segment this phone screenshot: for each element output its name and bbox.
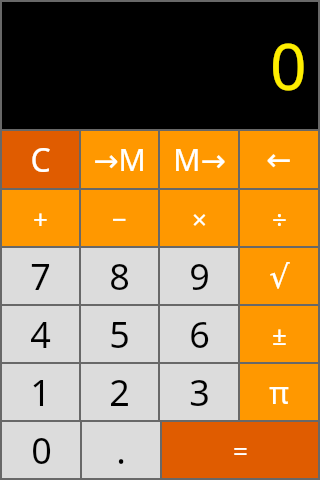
button[interactable]: 4 [2, 306, 79, 362]
staticText: ÷ [272, 201, 287, 236]
button[interactable]: →M [81, 131, 158, 188]
button[interactable]: √ [240, 248, 318, 304]
button[interactable]: − [81, 190, 158, 246]
button[interactable]: ← [240, 131, 318, 188]
button[interactable]: + [2, 190, 79, 246]
staticText: →M [93, 139, 146, 180]
button[interactable]: 1 [2, 364, 79, 420]
button[interactable]: M→ [160, 131, 238, 188]
staticText: 7 [30, 252, 51, 301]
staticText: √ [269, 258, 290, 295]
staticText: 1 [30, 368, 51, 417]
button[interactable]: ÷ [240, 190, 318, 246]
button[interactable]: 5 [81, 306, 158, 362]
button[interactable]: 0 [2, 422, 80, 478]
staticText: M→ [173, 139, 226, 180]
staticText: 6 [189, 310, 210, 359]
staticText: − [112, 201, 127, 236]
button[interactable]: 8 [81, 248, 158, 304]
button[interactable]: C [2, 131, 79, 188]
button[interactable]: 7 [2, 248, 79, 304]
staticText: + [33, 201, 48, 236]
staticText: 4 [30, 310, 51, 359]
button[interactable]: 9 [160, 248, 238, 304]
staticText: 9 [189, 252, 210, 301]
staticText: ← [266, 142, 292, 177]
button[interactable]: × [160, 190, 238, 246]
button[interactable]: π [240, 364, 318, 420]
button[interactable]: ± [240, 306, 318, 362]
staticText: 2 [109, 368, 130, 417]
staticText: 5 [109, 310, 130, 359]
button[interactable]: . [82, 422, 160, 478]
staticText: = [233, 433, 248, 468]
staticText: π [269, 372, 289, 413]
staticText: × [192, 201, 207, 236]
button[interactable]: 2 [81, 364, 158, 420]
staticText: C [30, 138, 51, 182]
staticText: ± [272, 317, 287, 352]
button[interactable]: = [162, 422, 318, 478]
staticText: 0 [270, 22, 307, 109]
staticText: 0 [31, 426, 52, 475]
button[interactable]: 6 [160, 306, 238, 362]
staticText: 3 [189, 368, 210, 417]
staticText: 8 [109, 252, 130, 301]
staticText: . [116, 426, 126, 475]
button[interactable]: 3 [160, 364, 238, 420]
